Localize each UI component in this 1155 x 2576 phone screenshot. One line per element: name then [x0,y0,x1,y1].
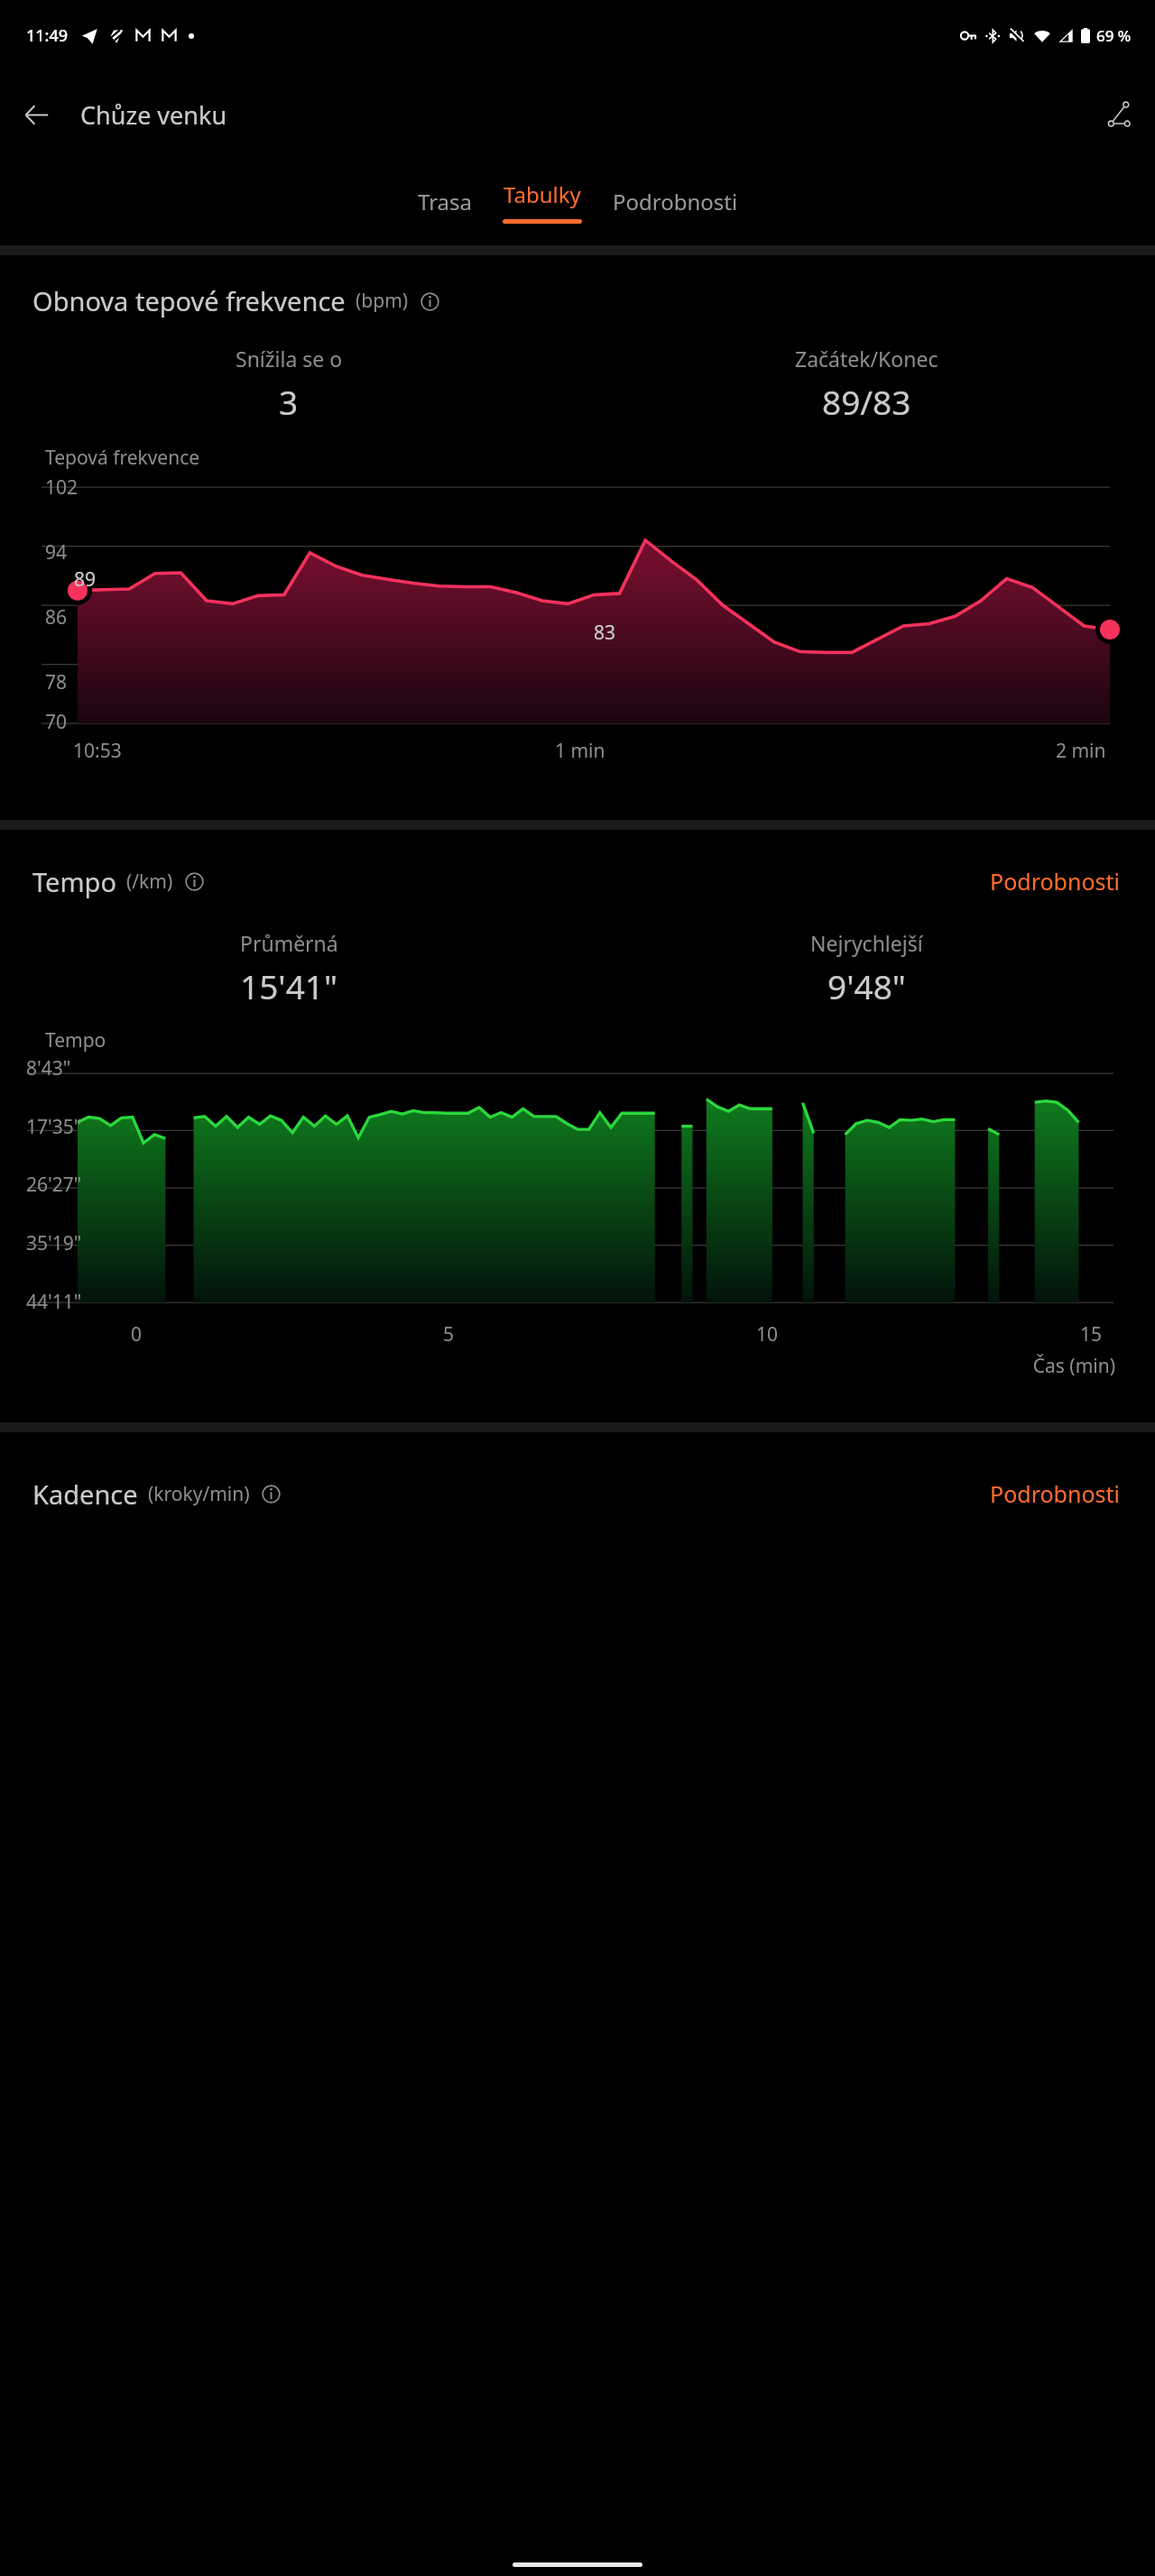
staticText: Snížila se o [236,345,343,373]
staticText: 10 [756,1321,779,1348]
staticText: 10:53 [73,738,122,764]
staticText: 78 [45,669,68,695]
staticText: 44'11" [26,1289,82,1315]
staticText: Začátek/Konec [795,345,938,373]
staticText: Nejrychlejší [810,929,923,957]
button[interactable]: Back [12,90,60,139]
button[interactable]: Info [181,869,207,894]
button[interactable]: Podrobnosti [985,858,1124,905]
staticText: 15'41" [240,963,338,1008]
staticText: (bpm) [356,288,409,314]
staticText: (kroky/min) [148,1481,250,1507]
staticText: Trasa [418,187,472,216]
button[interactable]: Podrobnosti [985,1470,1124,1517]
staticText: 70 [45,709,68,735]
staticText: 0 [131,1321,143,1348]
staticText: 8'43" [26,1055,71,1081]
staticText: Tabulky [504,179,581,209]
button[interactable]: Trasa [402,174,488,229]
staticText: Podrobnosti [990,1478,1120,1509]
staticText: Podrobnosti [990,866,1120,897]
staticText: Obnova tepové frekvence [32,283,346,318]
staticText: 15 [1080,1321,1103,1348]
staticText: 89 [74,566,97,593]
button[interactable]: Podrobnosti [596,174,754,229]
staticText: Podrobnosti [613,187,738,216]
button[interactable]: Info [258,1481,283,1506]
button[interactable]: Share [1095,90,1143,139]
button[interactable]: Info [417,289,442,314]
staticText: 2 min [1056,738,1106,764]
staticText: Tempo [45,1027,106,1053]
staticText: 94 [45,539,68,566]
staticText: 69 % [1096,25,1132,46]
staticText: 89/83 [822,379,911,424]
staticText: Kadence [32,1477,138,1512]
staticText: (/km) [126,869,173,895]
staticText: 1 min [555,738,605,764]
staticText: 26'27" [26,1172,82,1198]
staticText: 86 [45,604,68,630]
staticText: 102 [45,474,79,501]
staticText: 9'48" [827,963,906,1008]
staticText: Tempo [32,864,116,899]
staticText: 35'19" [26,1230,82,1256]
staticText: Tepová frekvence [45,445,200,471]
button[interactable]: Tabulky [488,179,596,224]
staticText: 83 [594,620,616,646]
staticText: 17'35" [26,1114,82,1140]
staticText: 11:49 [26,24,69,47]
staticText: Čas (min) [0,1353,1115,1379]
staticText: 3 [279,379,299,424]
staticText: Chůze venku [80,98,227,132]
staticText: Průměrná [240,929,338,957]
staticText: 5 [443,1321,455,1348]
